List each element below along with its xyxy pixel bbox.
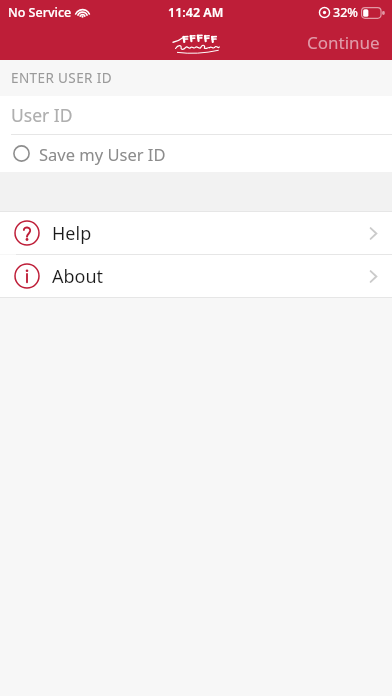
staticText: User ID [11, 103, 73, 127]
staticText: No Service [8, 4, 72, 21]
button[interactable]: About [0, 255, 392, 297]
other: Open About [369, 269, 378, 284]
staticText: ENTER USER ID [11, 69, 113, 87]
other: Open Help [369, 226, 378, 241]
button[interactable]: User ID [0, 96, 392, 135]
button[interactable]: Continue [295, 27, 392, 58]
button[interactable]: Help [0, 212, 392, 254]
staticText: Save my User ID [39, 143, 166, 165]
staticText: 11:42 AM [168, 4, 224, 21]
staticText: Continue [307, 31, 380, 54]
staticText: About [52, 264, 104, 289]
staticText: 32% [333, 4, 358, 21]
button[interactable]: Save my User ID [0, 135, 392, 172]
staticText: Help [52, 221, 92, 246]
